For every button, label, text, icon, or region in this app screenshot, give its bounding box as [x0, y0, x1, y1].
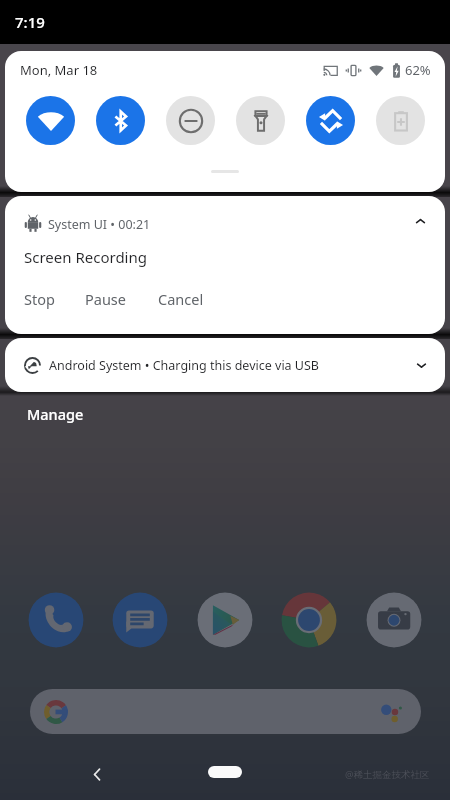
staticText: Cancel: [158, 289, 204, 309]
staticText: Stop: [24, 289, 55, 309]
button[interactable]: Messages: [112, 592, 168, 648]
staticText: 62%: [405, 61, 431, 79]
button[interactable]: Back: [89, 766, 106, 783]
button[interactable]: System UI • 00:21: [5, 196, 445, 334]
button[interactable]: Stop: [24, 289, 55, 309]
staticText: Manage: [27, 404, 84, 424]
staticText: Mon, Mar 18: [20, 61, 98, 79]
button[interactable]: [96, 96, 145, 145]
staticText: System UI • 00:21: [48, 216, 151, 233]
button[interactable]: Camera: [366, 592, 422, 648]
button[interactable]: Cancel: [158, 289, 204, 309]
button[interactable]: Android System • Charging this device vi…: [5, 338, 445, 392]
button[interactable]: Collapse: [414, 215, 427, 228]
button[interactable]: [30, 689, 421, 734]
button[interactable]: Play Store: [197, 592, 253, 648]
button[interactable]: Pause: [85, 289, 126, 309]
staticText: @稀土掘金技术社区: [345, 768, 430, 781]
button[interactable]: [306, 96, 355, 145]
button[interactable]: Phone: [28, 592, 84, 648]
button[interactable]: [166, 96, 215, 145]
button[interactable]: [376, 96, 425, 145]
button[interactable]: [236, 96, 285, 145]
staticText: Screen Recording: [24, 247, 147, 267]
button[interactable]: Home: [208, 766, 242, 778]
staticText: 7:19: [15, 12, 45, 32]
button[interactable]: Chrome: [281, 592, 337, 648]
button[interactable]: [26, 96, 75, 145]
other: Expand: [415, 359, 428, 372]
staticText: Pause: [85, 289, 126, 309]
staticText: Android System • Charging this device vi…: [49, 357, 319, 374]
